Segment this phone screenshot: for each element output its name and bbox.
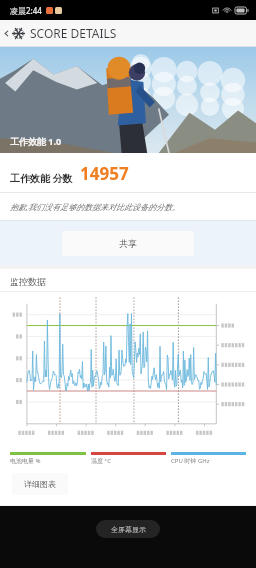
staticText: 全屏幕显示 <box>111 525 146 534</box>
staticText: 共享 <box>119 238 137 249</box>
staticText: 温度 °C <box>91 457 111 465</box>
staticText: 工作效能 1.0 <box>10 135 62 147</box>
staticText: 凌晨2:44 <box>10 5 42 16</box>
staticText: 监控数据 <box>10 276 46 287</box>
staticText: SCORE DETAILS <box>30 25 117 41</box>
staticText: 抱歉,我们没有足够的数据来对比此设备的分数。 <box>10 201 181 212</box>
staticText: CPU 时钟 GHz <box>171 457 210 465</box>
button[interactable]: 全屏幕显示 <box>96 520 160 538</box>
button[interactable]: 详细图表 <box>12 473 68 495</box>
button[interactable]: 共享 <box>62 231 194 256</box>
staticText: 详细图表 <box>24 479 56 489</box>
staticText: 14957 <box>80 162 129 185</box>
button[interactable]: Back <box>0 20 12 46</box>
staticText: 工作效能 分数 <box>10 171 73 185</box>
staticText: 电池电量 % <box>10 457 41 465</box>
